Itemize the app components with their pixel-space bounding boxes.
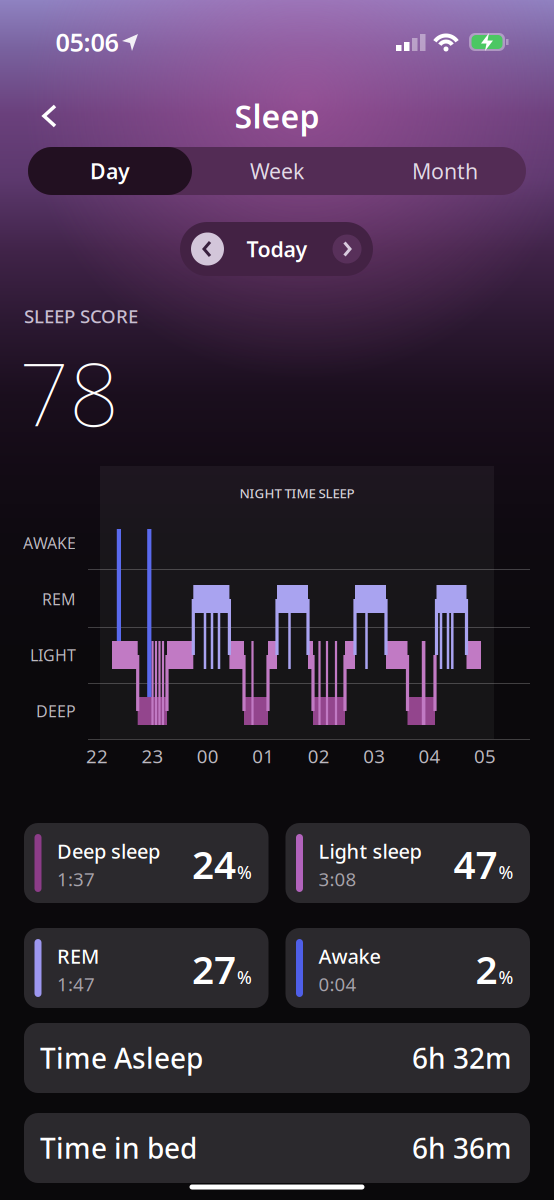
staticText: % bbox=[498, 861, 513, 884]
staticText: % bbox=[498, 966, 513, 989]
staticText: Deep sleep bbox=[57, 838, 160, 864]
button[interactable]: REM bbox=[24, 928, 268, 1008]
button[interactable] bbox=[35, 104, 65, 128]
staticText: 04 bbox=[419, 744, 441, 768]
staticText: LIGHT bbox=[30, 644, 76, 666]
staticText: Day bbox=[90, 157, 130, 185]
staticText: 6h 32m bbox=[412, 1039, 512, 1077]
staticText: 02 bbox=[308, 744, 330, 768]
staticText: 23 bbox=[141, 744, 163, 768]
staticText: 24 bbox=[192, 838, 236, 890]
staticText: DEEP bbox=[36, 700, 76, 722]
button[interactable]: Time Asleep bbox=[24, 1023, 530, 1093]
staticText: 6h 36m bbox=[412, 1129, 512, 1167]
staticText: 27 bbox=[192, 943, 236, 995]
staticText: SLEEP SCORE bbox=[24, 304, 138, 328]
staticText: % bbox=[237, 966, 252, 989]
staticText: 1:47 bbox=[57, 972, 95, 996]
staticText: 00 bbox=[197, 744, 219, 768]
button[interactable]: Light sleep bbox=[285, 823, 530, 903]
staticText: 47 bbox=[453, 838, 497, 890]
staticText: REM bbox=[42, 588, 76, 610]
button[interactable] bbox=[191, 232, 224, 265]
staticText: Light sleep bbox=[318, 838, 421, 864]
staticText: NIGHT TIME SLEEP bbox=[239, 484, 354, 502]
staticText: 3:08 bbox=[318, 867, 356, 891]
staticText: AWAKE bbox=[23, 532, 76, 554]
staticText: 05 bbox=[474, 744, 496, 768]
staticText: REM bbox=[57, 943, 99, 969]
staticText: % bbox=[237, 861, 252, 884]
staticText: 2 bbox=[475, 943, 497, 995]
staticText: 1:37 bbox=[57, 867, 95, 891]
button[interactable]: Day bbox=[28, 147, 192, 195]
staticText: 78 bbox=[19, 334, 119, 450]
staticText: Today bbox=[246, 235, 307, 263]
staticText: 0:04 bbox=[318, 972, 356, 996]
staticText: Time in bed bbox=[40, 1129, 197, 1167]
button[interactable]: Time in bed bbox=[24, 1113, 530, 1183]
staticText: Time Asleep bbox=[40, 1039, 203, 1077]
button[interactable]: Awake bbox=[285, 928, 530, 1008]
staticText: 03 bbox=[363, 744, 385, 768]
button[interactable] bbox=[332, 234, 361, 263]
button[interactable]: Month bbox=[363, 147, 527, 195]
staticText: 01 bbox=[252, 744, 274, 768]
button[interactable]: Week bbox=[195, 147, 359, 195]
staticText: 05:06 bbox=[55, 25, 118, 59]
staticText: Month bbox=[412, 157, 478, 185]
staticText: Awake bbox=[318, 943, 380, 969]
staticText: 22 bbox=[86, 744, 108, 768]
staticText: Sleep bbox=[234, 95, 319, 137]
button[interactable]: Deep sleep bbox=[24, 823, 268, 903]
staticText: Week bbox=[250, 157, 304, 185]
